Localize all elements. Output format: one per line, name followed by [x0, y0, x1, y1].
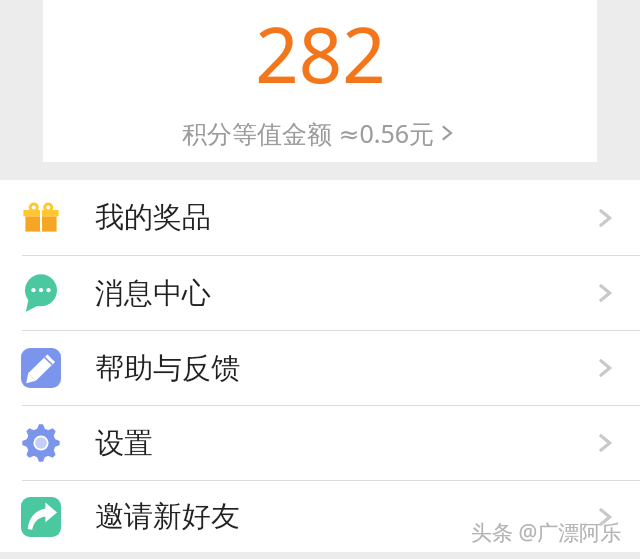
staticText: 帮助与反馈	[95, 350, 240, 387]
staticText: 头条 @广漂阿乐	[471, 518, 622, 547]
staticText: 消息中心	[95, 275, 211, 312]
button[interactable]: 邀请新好友	[0, 481, 640, 552]
staticText: 积分等值金额 ≈0.56元	[182, 116, 435, 150]
staticText: 我的奖品	[95, 199, 211, 236]
button[interactable]: 帮助与反馈	[0, 331, 640, 405]
button[interactable]: 我的奖品	[0, 180, 640, 255]
button[interactable]: 消息中心	[0, 256, 640, 330]
staticText: 设置	[95, 425, 153, 462]
staticText: 邀请新好友	[95, 498, 240, 535]
staticText: 282	[255, 2, 386, 106]
button[interactable]: 设置	[0, 406, 640, 480]
button[interactable]: 282	[43, 0, 597, 162]
